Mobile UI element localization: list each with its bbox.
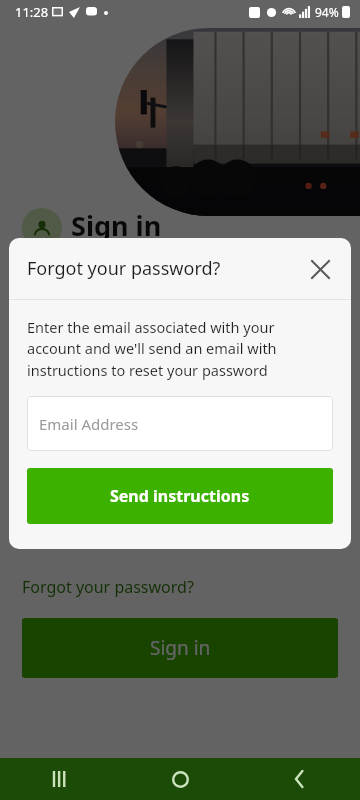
staticText: Email Address (39, 414, 139, 434)
button[interactable]: Close (303, 252, 337, 286)
button[interactable]: Back (240, 758, 360, 800)
button[interactable]: Home (120, 758, 240, 800)
staticText: Sign in (71, 207, 162, 244)
button[interactable]: Recents (0, 758, 120, 800)
staticText: 94% (315, 4, 339, 20)
staticText: 11:28 (15, 3, 49, 21)
button[interactable]: Send instructions (27, 468, 333, 524)
button[interactable]: Email Address (27, 396, 333, 451)
button[interactable]: Sign in (22, 618, 338, 678)
staticText: Forgot your password? (27, 256, 221, 281)
staticText: Enter the email associated with your acc… (27, 317, 331, 381)
staticText: Sign in (150, 635, 211, 661)
button[interactable]: Forgot your password? (22, 576, 194, 598)
staticText: Send instructions (110, 485, 250, 507)
